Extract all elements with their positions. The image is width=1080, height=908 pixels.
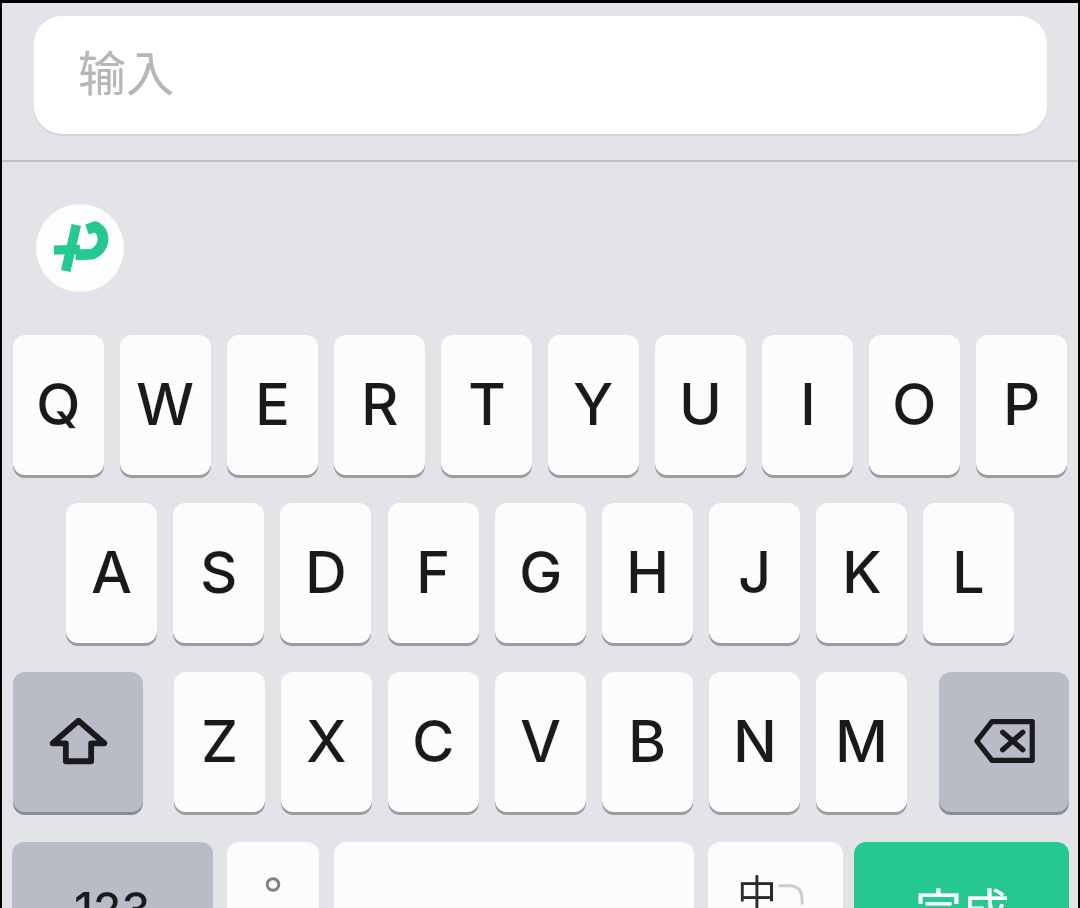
button[interactable]: 完成 <box>854 842 1069 908</box>
staticText: D <box>305 537 347 607</box>
button[interactable]: S <box>173 503 264 643</box>
staticText: P <box>1003 369 1041 439</box>
button[interactable]: J <box>709 503 800 643</box>
button[interactable]: Shift <box>13 672 143 812</box>
button[interactable]: E <box>227 335 318 475</box>
staticText: X <box>306 706 347 776</box>
staticText: U <box>679 369 722 439</box>
button[interactable]: N <box>709 672 800 812</box>
button[interactable]: D <box>280 503 371 643</box>
button[interactable]: Input method settings <box>36 204 124 292</box>
button[interactable]: H <box>602 503 693 643</box>
button[interactable]: C <box>388 672 479 812</box>
staticText: M <box>835 706 888 776</box>
staticText: V <box>520 706 562 776</box>
staticText: Q <box>36 369 81 439</box>
staticText: 中 <box>737 863 777 908</box>
button[interactable]: Switch input language <box>708 842 843 908</box>
staticText: Y <box>573 369 614 439</box>
button[interactable]: B <box>602 672 693 812</box>
button[interactable]: X <box>281 672 372 812</box>
button[interactable]: O <box>869 335 960 475</box>
button[interactable]: Backspace <box>939 672 1069 812</box>
staticText: S <box>200 537 238 607</box>
staticText: C <box>412 706 455 776</box>
button[interactable]: I <box>762 335 853 475</box>
staticText: O <box>892 369 937 439</box>
button[interactable]: K <box>816 503 907 643</box>
staticText: H <box>626 537 670 607</box>
staticText: 123 <box>74 881 151 908</box>
staticText: L <box>952 537 985 607</box>
button[interactable]: R <box>334 335 425 475</box>
button[interactable]: Z <box>174 672 265 812</box>
staticText: A <box>91 537 133 607</box>
button[interactable]: 输入 <box>34 16 1047 134</box>
staticText: W <box>136 369 195 439</box>
button[interactable]: F <box>388 503 479 643</box>
staticText: N <box>733 706 777 776</box>
button[interactable]: Period <box>227 842 319 908</box>
button[interactable]: 123 <box>12 842 213 908</box>
staticText: T <box>468 369 506 439</box>
button[interactable]: A <box>66 503 157 643</box>
button[interactable]: T <box>441 335 532 475</box>
button[interactable]: W <box>120 335 211 475</box>
staticText: 完成 <box>915 873 1009 908</box>
button[interactable]: Q <box>13 335 104 475</box>
button[interactable]: V <box>495 672 586 812</box>
button[interactable]: M <box>816 672 907 812</box>
staticText: Z <box>201 706 239 776</box>
staticText: G <box>519 537 563 607</box>
staticText: F <box>416 537 451 607</box>
staticText: I <box>800 369 816 439</box>
button[interactable]: G <box>495 503 586 643</box>
button[interactable]: P <box>976 335 1067 475</box>
staticText: E <box>255 369 290 439</box>
button[interactable]: Y <box>548 335 639 475</box>
staticText: 输入 <box>78 35 175 105</box>
button[interactable]: U <box>655 335 746 475</box>
button[interactable]: L <box>923 503 1014 643</box>
staticText: B <box>628 706 667 776</box>
staticText: R <box>361 369 399 439</box>
staticText: K <box>842 537 882 607</box>
staticText: J <box>738 537 772 607</box>
